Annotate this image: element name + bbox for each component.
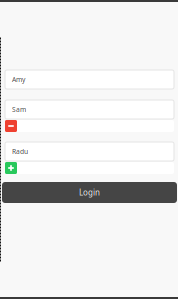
button[interactable]: Add person [5,162,17,174]
staticText: Radu [12,147,28,156]
staticText: Amy [12,75,25,84]
button[interactable]: Remove Sam [5,120,17,132]
button[interactable]: Login [2,182,177,203]
staticText: Login [79,187,100,198]
staticText: Sam [12,105,26,114]
